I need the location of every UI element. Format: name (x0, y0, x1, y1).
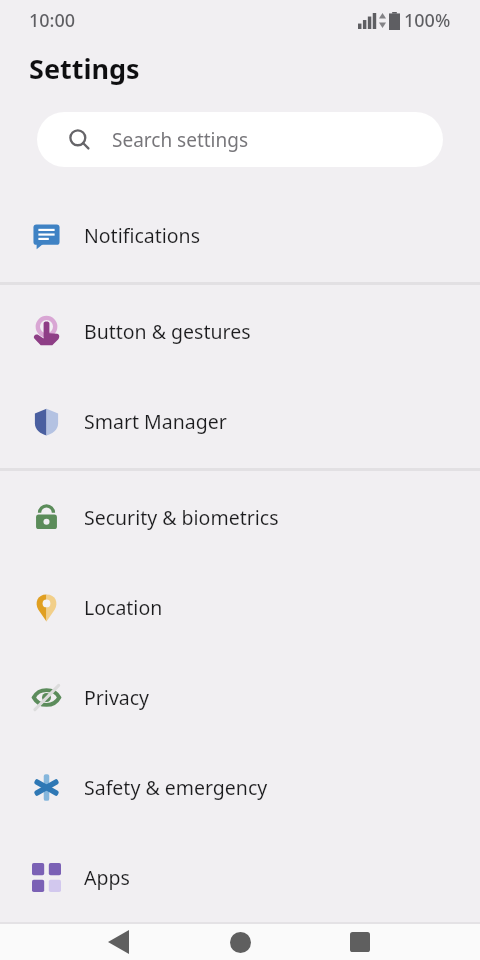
button[interactable]: Home (216, 924, 264, 960)
staticText: Safety & emergency (84, 774, 268, 801)
staticText: Button & gestures (84, 318, 251, 345)
button[interactable]: Apps (0, 832, 480, 922)
button[interactable]: Security and biometrics (0, 472, 480, 562)
other: Smart Manager (32, 407, 61, 436)
staticText: Apps (84, 864, 130, 891)
button[interactable]: Recent apps (336, 924, 384, 960)
other: Safety and emergency (32, 773, 61, 802)
button[interactable]: Safety and emergency (0, 742, 480, 832)
button[interactable]: Privacy (0, 652, 480, 742)
other: Apps (32, 863, 61, 892)
button[interactable]: Button and gestures (0, 286, 480, 376)
staticText: Smart Manager (84, 408, 227, 435)
staticText: 100% (404, 8, 451, 33)
other: Privacy (32, 683, 61, 712)
other: Button and gestures (32, 317, 61, 346)
staticText: Settings (29, 50, 140, 87)
button[interactable]: Back (94, 924, 142, 960)
button[interactable]: Search settings (37, 112, 443, 167)
button[interactable]: Smart Manager (0, 376, 480, 466)
other: Notifications (32, 221, 61, 250)
staticText: Location (84, 594, 163, 621)
button[interactable]: Notifications (0, 190, 480, 280)
other: Security and biometrics (32, 503, 61, 532)
other: Location (32, 593, 61, 622)
staticText: Security & biometrics (84, 504, 279, 531)
staticText: 10:00 (29, 8, 76, 33)
staticText: Privacy (84, 684, 150, 711)
staticText: Search settings (112, 127, 249, 153)
staticText: Notifications (84, 222, 200, 249)
button[interactable]: Location (0, 562, 480, 652)
